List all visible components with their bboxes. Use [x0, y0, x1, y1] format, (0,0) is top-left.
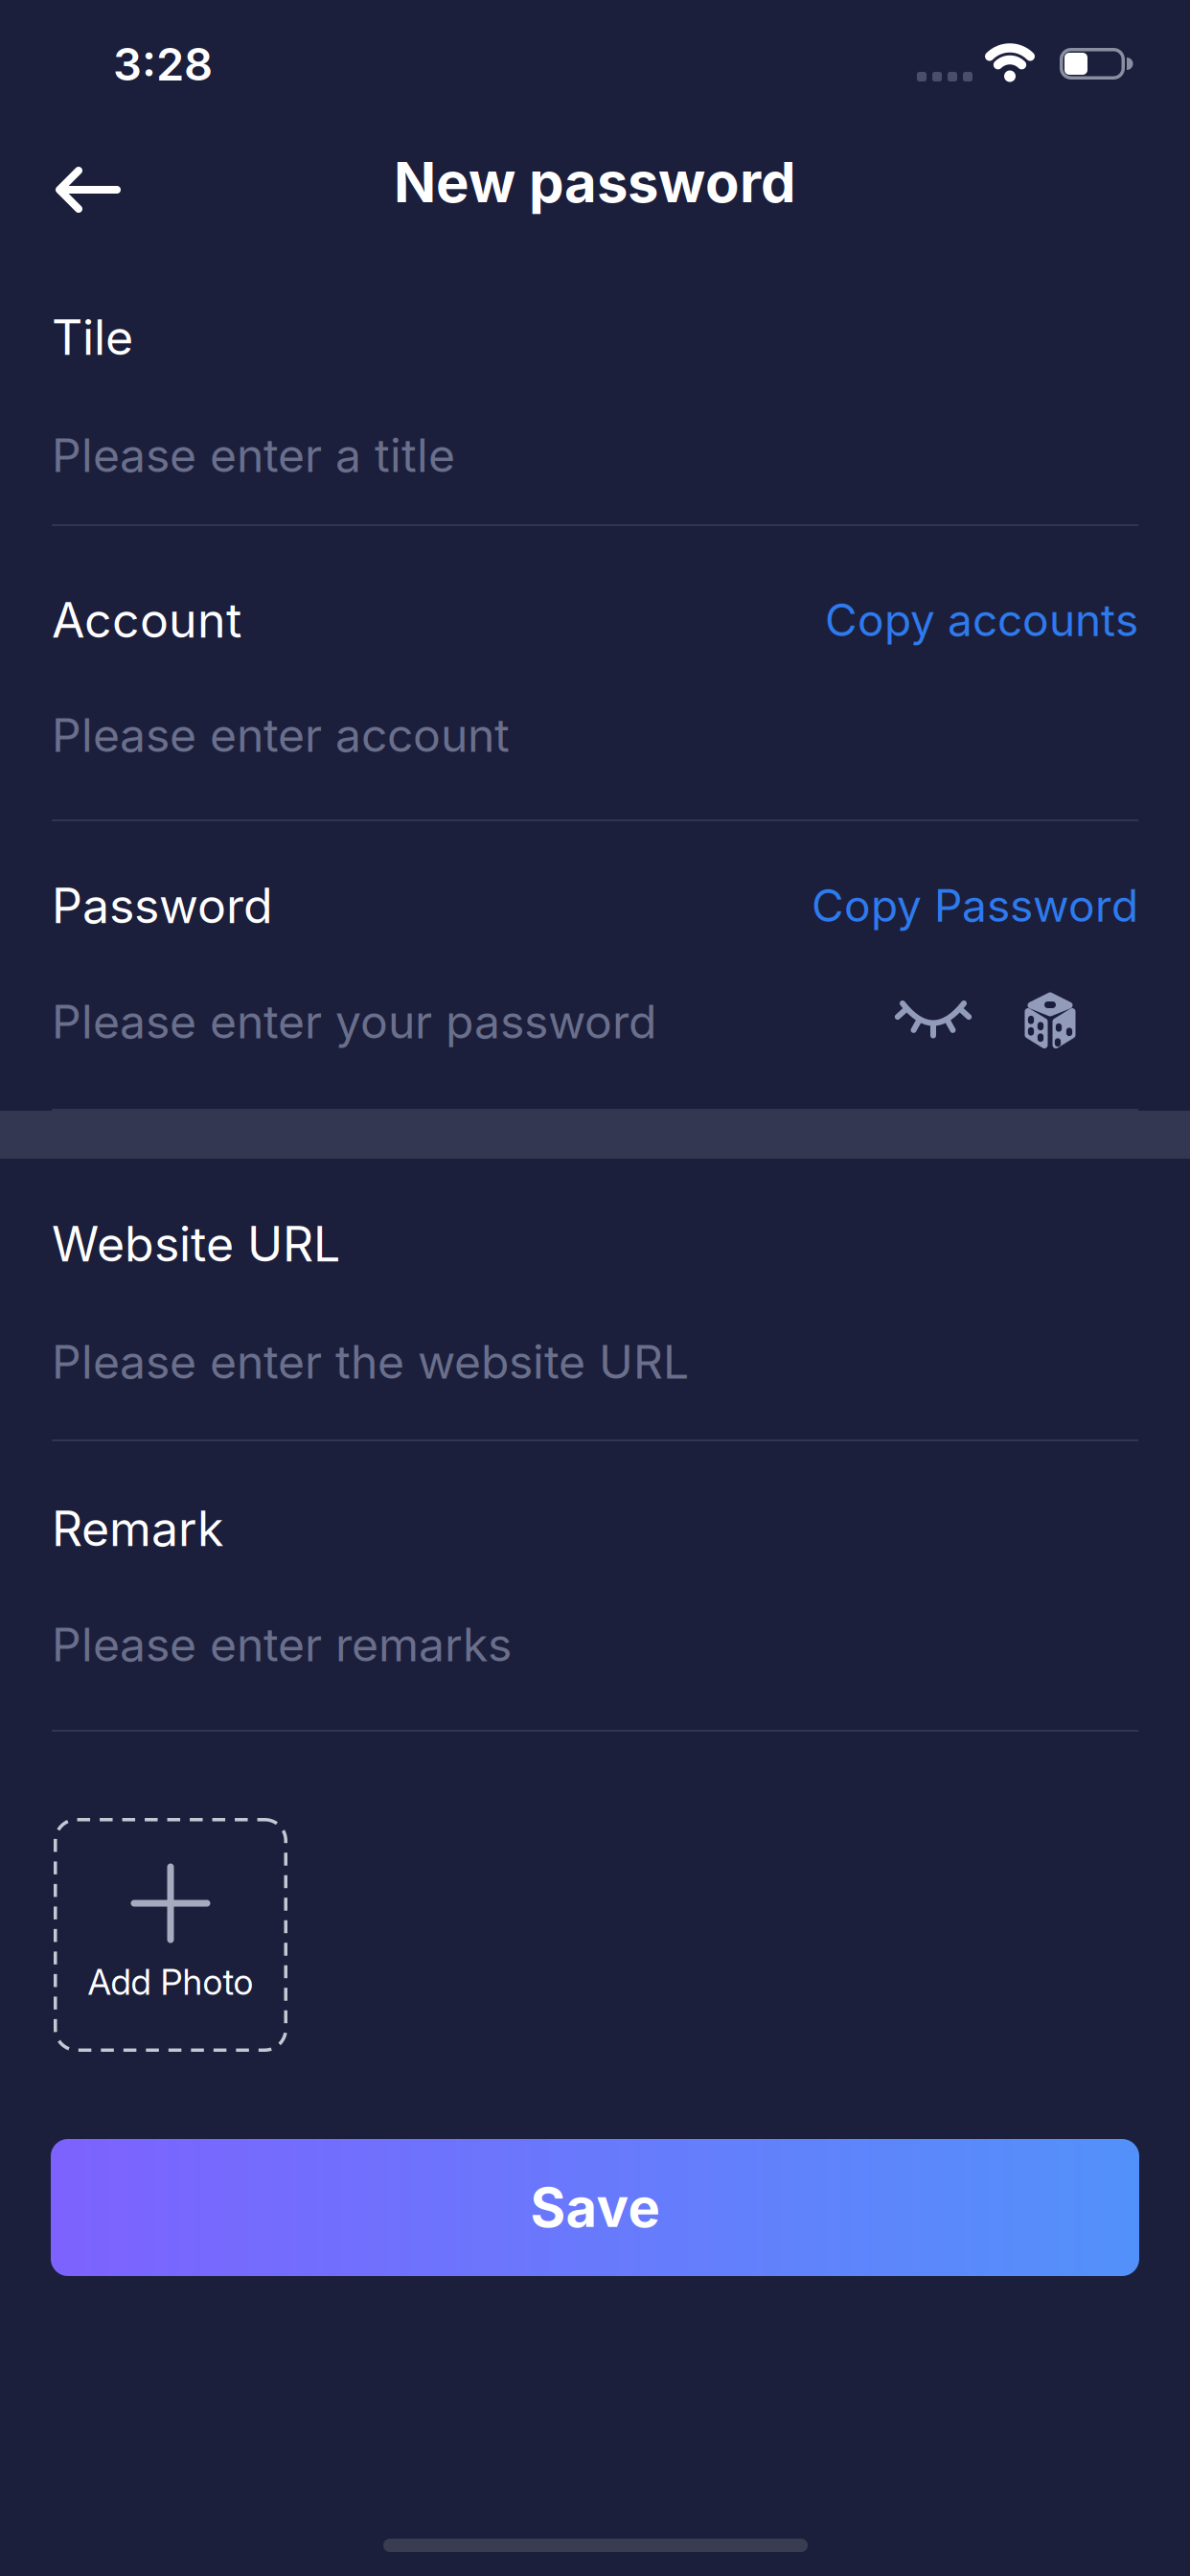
- button[interactable]: Generate random password: [1024, 992, 1076, 1049]
- staticText: Please enter remarks: [52, 1617, 512, 1672]
- staticText: Copy Password: [812, 879, 1138, 932]
- staticText: Remark: [52, 1500, 223, 1558]
- button[interactable]: Back: [56, 167, 119, 213]
- staticText: Save: [530, 2175, 660, 2240]
- staticText: Please enter the website URL: [52, 1334, 689, 1390]
- button[interactable]: Show password: [901, 999, 966, 1045]
- staticText: Copy accounts: [825, 593, 1138, 647]
- button[interactable]: Copy accounts: [825, 593, 1138, 647]
- staticText: Account: [52, 591, 241, 649]
- staticText: Website URL: [52, 1215, 340, 1273]
- staticText: Please enter your password: [52, 994, 656, 1049]
- button[interactable]: Add Photo: [54, 1818, 287, 2052]
- staticText: Please enter a title: [52, 427, 455, 483]
- staticText: New password: [394, 148, 796, 216]
- staticText: Please enter account: [52, 707, 510, 763]
- staticText: Tile: [52, 308, 133, 366]
- button[interactable]: Copy Password: [812, 879, 1138, 932]
- staticText: Add Photo: [88, 1960, 253, 2003]
- staticText: 3:28: [113, 37, 213, 92]
- staticText: Password: [52, 877, 273, 935]
- button[interactable]: Save: [51, 2139, 1139, 2276]
